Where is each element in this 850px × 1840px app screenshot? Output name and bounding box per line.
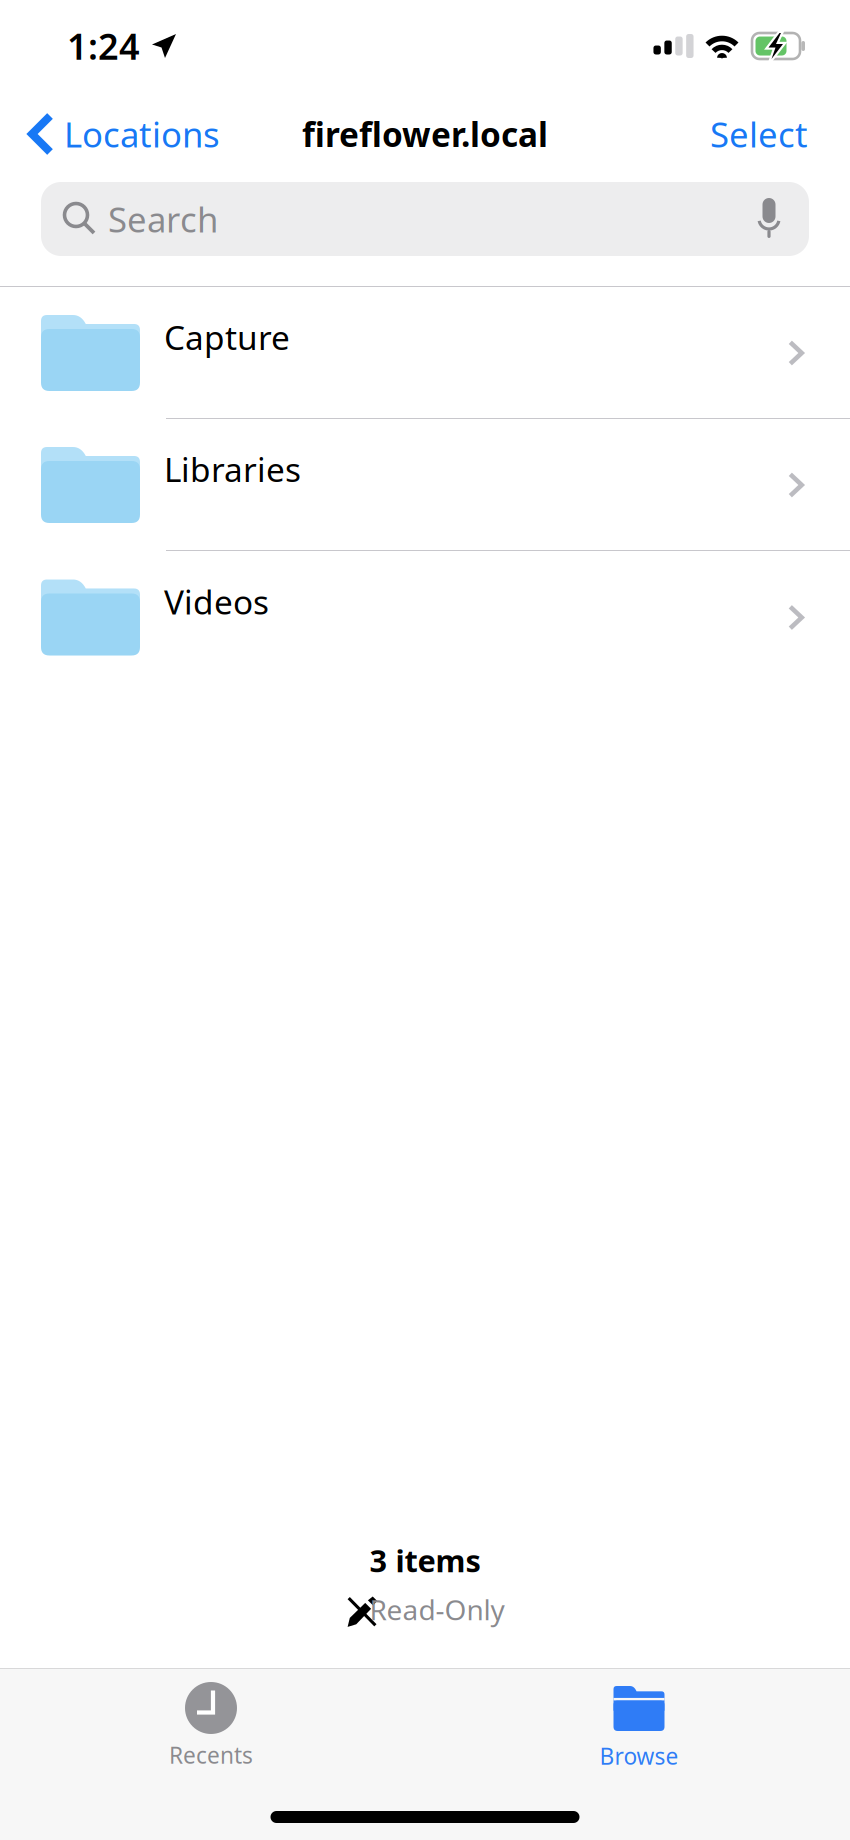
button[interactable]: Select	[710, 99, 850, 169]
staticText: Recents	[169, 1740, 253, 1770]
button[interactable]: Capture	[0, 287, 850, 419]
staticText: Read-Only	[369, 1591, 504, 1628]
staticText: Libraries	[164, 447, 301, 491]
button[interactable]: Libraries	[0, 419, 850, 551]
button[interactable]: Locations	[0, 99, 220, 169]
staticText: fireflower.local	[302, 112, 548, 156]
staticText: Videos	[164, 579, 269, 624]
button[interactable]: Videos	[0, 551, 850, 683]
button[interactable]: Search	[0, 182, 850, 256]
staticText: Locations	[64, 111, 220, 157]
staticText: Search	[108, 196, 218, 242]
staticText: Select	[710, 111, 808, 157]
staticText: Browse	[599, 1741, 678, 1771]
button[interactable]: Browse	[544, 1669, 734, 1840]
button[interactable]: Recents	[116, 1669, 306, 1840]
staticText: 3 items	[369, 1540, 480, 1581]
staticText: Capture	[164, 315, 290, 359]
staticText: 1:24	[67, 22, 140, 70]
